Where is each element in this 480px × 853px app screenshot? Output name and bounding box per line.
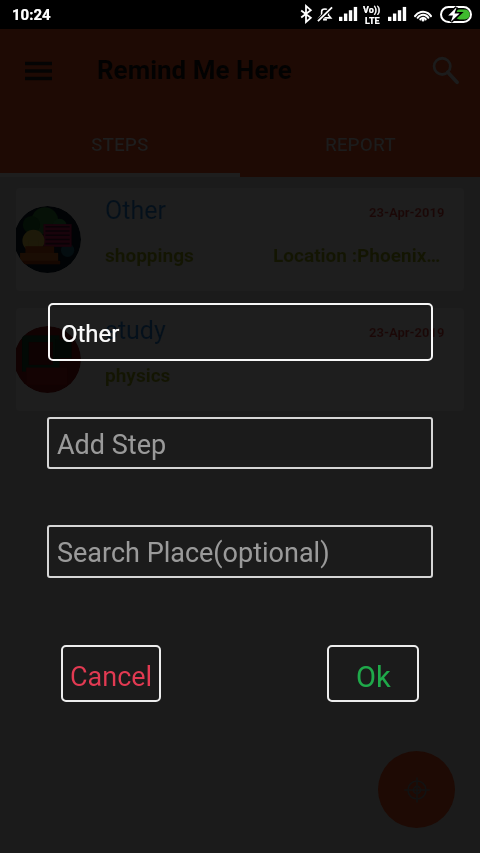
button[interactable]: Cancel — [61, 645, 161, 702]
staticText: STEPS — [91, 133, 149, 155]
button[interactable]: Search Place(optional) — [47, 525, 433, 578]
button[interactable]: STEPS — [0, 110, 240, 177]
staticText: study — [105, 316, 166, 345]
button[interactable]: Open navigation menu — [16, 48, 60, 92]
button[interactable]: REPORT — [240, 110, 480, 177]
staticText: 23-Apr-2019 — [369, 325, 445, 340]
staticText: Other — [105, 196, 166, 225]
staticText: Ok — [356, 660, 391, 694]
staticText: Add Step — [57, 429, 167, 461]
button[interactable]: study — [16, 308, 464, 411]
button[interactable]: Other — [16, 188, 464, 291]
button[interactable]: Add reminder — [378, 751, 455, 828]
staticText: Location :Phoenix ... — [273, 244, 445, 266]
staticText: physics — [105, 364, 171, 386]
staticText: Other — [61, 320, 120, 348]
staticText: Search Place(optional) — [57, 537, 330, 569]
button[interactable]: Ok — [327, 645, 419, 702]
staticText: 23-Apr-2019 — [369, 205, 445, 220]
staticText: Cancel — [70, 661, 153, 693]
staticText: REPORT — [325, 133, 396, 155]
staticText: LTE — [365, 16, 380, 27]
button[interactable]: Search — [423, 48, 467, 92]
button[interactable]: Other — [48, 303, 433, 361]
staticText: Remind Me Here — [97, 55, 292, 85]
staticText: 10:24 — [12, 6, 51, 24]
staticText: Vo)) — [363, 5, 381, 16]
staticText: shoppings — [105, 244, 194, 266]
button[interactable]: Add Step — [47, 417, 433, 469]
